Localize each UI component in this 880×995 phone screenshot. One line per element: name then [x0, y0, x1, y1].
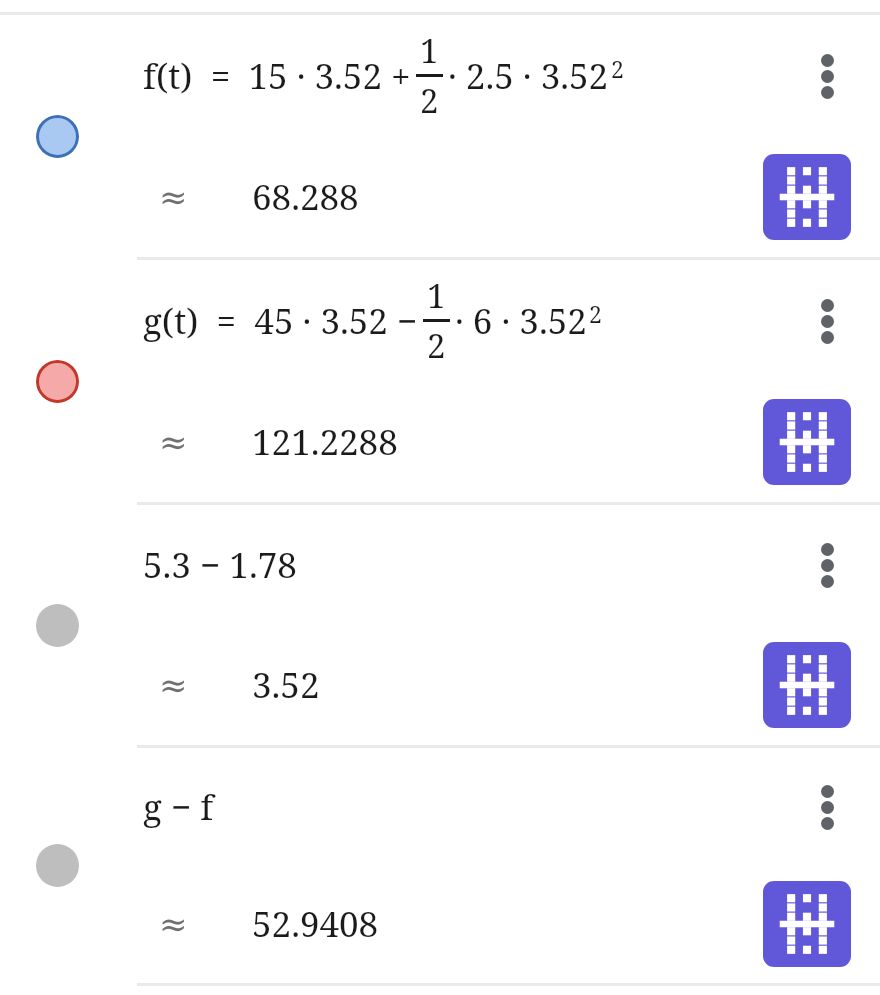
staticText: 121.2288 — [252, 418, 398, 466]
button[interactable]: Show table of values — [763, 399, 851, 485]
staticText: f(t) = 15 · 3.52 + — [143, 52, 411, 100]
button[interactable]: More options — [799, 46, 855, 106]
staticText: ≈ — [159, 904, 188, 944]
staticText: 1 — [427, 273, 446, 318]
staticText: 2 — [420, 78, 439, 123]
staticText: · 2.5 · 3.52 — [448, 52, 609, 100]
button[interactable]: g − f — [137, 748, 880, 983]
staticText: 68.288 — [252, 173, 359, 221]
staticText: ≈ — [159, 665, 188, 705]
button[interactable]: g(t) = 45 · 3.52 − — [137, 260, 880, 502]
button[interactable]: Show table of values — [763, 642, 851, 728]
button[interactable]: Toggle visibility — [36, 844, 79, 887]
button[interactable]: Toggle visibility — [36, 115, 79, 158]
staticText: 2 — [427, 323, 446, 368]
staticText: g(t) = 45 · 3.52 − — [143, 297, 418, 345]
staticText: ≈ — [159, 177, 188, 217]
button[interactable]: Show table of values — [763, 881, 851, 967]
button[interactable]: More options — [799, 777, 855, 837]
button[interactable]: f(t) = 15 · 3.52 + — [137, 15, 880, 257]
button[interactable]: More options — [799, 291, 855, 351]
staticText: ≈ — [159, 422, 188, 462]
staticText: 2 — [589, 298, 602, 329]
button[interactable]: Toggle visibility — [36, 360, 79, 403]
staticText: 2 — [611, 53, 624, 84]
staticText: · 6 · 3.52 — [455, 297, 587, 345]
staticText: 5.3 − 1.78 — [143, 541, 297, 589]
button[interactable]: More options — [799, 535, 855, 595]
staticText: 52.9408 — [252, 900, 379, 948]
button[interactable]: Show table of values — [763, 154, 851, 240]
button[interactable]: 5.3 − 1.78 — [137, 505, 880, 745]
staticText: 1 — [420, 28, 439, 73]
staticText: g − f — [143, 783, 214, 831]
button[interactable]: Toggle visibility — [36, 604, 79, 647]
staticText: 3.52 — [252, 661, 320, 709]
